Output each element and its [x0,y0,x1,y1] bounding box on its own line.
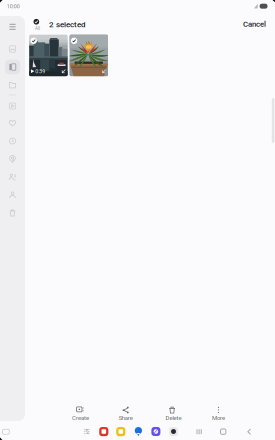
button[interactable]: Photo, selected [0,0,275,440]
button[interactable]: Archive [0,0,15,15]
button[interactable]: App [0,0,275,440]
button[interactable]: Back [0,0,275,440]
button[interactable]: More [0,0,275,440]
button[interactable]: Collections [0,0,15,15]
button[interactable]: Share [0,0,275,440]
button[interactable]: Places [0,0,15,15]
button[interactable]: Menu [0,0,15,14]
button[interactable]: Photos [0,0,15,15]
button[interactable]: Trash [0,0,15,15]
button[interactable]: Recents [0,0,275,440]
staticText: 0:39 [35,69,45,74]
button[interactable]: Cancel [0,0,23,9]
button[interactable]: Home [0,0,275,440]
button[interactable]: Browser [0,0,275,440]
button[interactable]: App [0,0,275,440]
button[interactable]: Create [0,0,275,440]
button[interactable]: Albums [0,0,15,15]
button[interactable]: People [0,0,15,15]
staticText: 10:00 [7,3,20,9]
staticText: Delete [165,415,181,421]
staticText: Create [72,415,89,421]
button[interactable]: Delete [0,0,275,440]
staticText: More [212,415,225,421]
button[interactable]: Video 0:39, selected [0,0,275,440]
staticText: Cancel [243,20,266,29]
button[interactable]: Camera [0,0,275,440]
staticText: All [35,26,40,31]
staticText: Share [119,415,133,421]
button[interactable]: Recent [0,0,15,15]
button[interactable]: Favourites [0,0,15,15]
button[interactable]: Videos [0,0,15,15]
button[interactable]: All, selected [0,0,275,440]
staticText: 2 selected [49,20,86,29]
